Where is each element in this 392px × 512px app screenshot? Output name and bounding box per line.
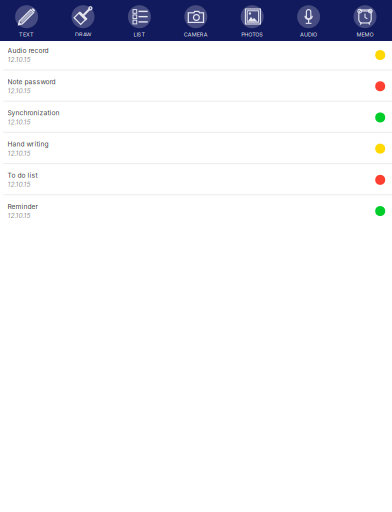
staticText: TEXT [19, 31, 34, 38]
button[interactable]: AUDIO [280, 0, 337, 42]
button[interactable]: Synchronization [1, 103, 392, 135]
staticText: LIST [133, 31, 145, 38]
button[interactable]: CAMERA [168, 0, 224, 42]
staticText: 12.10.15 [8, 180, 31, 188]
button[interactable]: DRAW [55, 0, 111, 42]
button[interactable]: LIST [111, 0, 168, 42]
staticText: DRAW [75, 31, 91, 38]
button[interactable]: To do list [1, 166, 392, 197]
staticText: 12.10.15 [8, 212, 31, 220]
staticText: PHOTOS [241, 31, 263, 38]
button[interactable]: Note password [1, 72, 392, 103]
staticText: Synchronization [8, 109, 60, 117]
staticText: Reminder [8, 202, 39, 211]
staticText: 12.10.15 [8, 56, 31, 64]
button[interactable]: MEMO [337, 0, 392, 42]
button[interactable]: PHOTOS [224, 0, 280, 42]
staticText: Note password [8, 78, 56, 86]
staticText: 12.10.15 [8, 149, 31, 157]
staticText: To do list [8, 171, 38, 179]
button[interactable]: Reminder [1, 197, 392, 228]
button[interactable]: TEXT [0, 0, 55, 42]
staticText: MEMO [356, 31, 373, 38]
staticText: Audio record [8, 46, 49, 55]
staticText: AUDIO [300, 31, 317, 38]
staticText: Hand writing [8, 140, 49, 148]
staticText: 12.10.15 [8, 118, 31, 126]
staticText: 12.10.15 [8, 87, 31, 95]
button[interactable]: Audio record [1, 41, 392, 72]
staticText: CAMERA [184, 31, 208, 38]
button[interactable]: Hand writing [1, 135, 392, 166]
